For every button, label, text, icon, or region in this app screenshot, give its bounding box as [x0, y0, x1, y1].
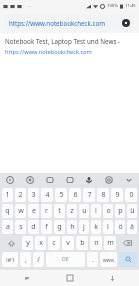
staticText: 7 [87, 190, 92, 200]
button[interactable]: a [2, 220, 13, 234]
staticText: 100% [107, 3, 118, 9]
staticText: 1 [5, 190, 10, 200]
staticText: s [19, 222, 23, 232]
button[interactable]: h [67, 220, 77, 234]
staticText: / [37, 255, 40, 265]
button[interactable]: g [54, 220, 65, 234]
button[interactable]: j [79, 220, 89, 234]
staticText: g [57, 222, 62, 232]
staticText: ä [130, 222, 134, 232]
button[interactable]: Backspace [118, 236, 137, 250]
staticText: 2 [18, 190, 23, 200]
staticText: https://www.notebookcheck.com [5, 48, 92, 56]
button[interactable]: ö [115, 220, 125, 234]
button[interactable]: Clear [122, 19, 130, 27]
button[interactable]: Space [46, 252, 85, 267]
staticText: z [70, 206, 74, 216]
button[interactable]: o [103, 204, 113, 218]
button[interactable]: i [91, 204, 101, 218]
button[interactable]: c [48, 236, 60, 250]
button[interactable]: 6 [69, 188, 81, 202]
staticText: r [45, 206, 48, 216]
staticText: !#1 [6, 256, 15, 264]
staticText: u [82, 206, 87, 216]
staticText: 8 [101, 190, 106, 200]
button[interactable]: 0 [125, 188, 137, 202]
button[interactable]: m [104, 236, 116, 250]
button[interactable]: 7 [83, 188, 95, 202]
button[interactable]: Home [55, 270, 85, 286]
button[interactable]: Voice input [83, 174, 95, 186]
button[interactable]: y [22, 236, 33, 250]
button[interactable]: Emoji [4, 174, 16, 186]
staticText: q [5, 206, 10, 216]
button[interactable]: 2 [15, 188, 26, 202]
button[interactable]: https://www.notebookcheck.com [4, 15, 135, 30]
button[interactable]: Notebook Test, Laptop Test und News - No… [0, 33, 139, 60]
staticText: Notebook Test, Laptop Test und News - No… [5, 37, 137, 46]
button[interactable]: / [33, 252, 44, 267]
staticText: 11:45 [125, 3, 136, 9]
button[interactable]: 5 [55, 188, 67, 202]
button[interactable]: b [76, 236, 88, 250]
button[interactable]: Settings [103, 174, 115, 186]
button[interactable]: . [87, 252, 98, 267]
staticText: w [18, 206, 24, 216]
staticText: 6 [73, 190, 78, 200]
button[interactable]: s [15, 220, 26, 234]
button[interactable]: 9 [111, 188, 123, 202]
button[interactable]: k [91, 220, 101, 234]
staticText: k [94, 222, 98, 232]
staticText: n [94, 238, 99, 248]
button[interactable]: ü [127, 204, 137, 218]
button[interactable]: 8 [97, 188, 109, 202]
button[interactable]: e [28, 204, 39, 218]
button[interactable]: u [79, 204, 89, 218]
staticText: e [32, 206, 36, 216]
button[interactable]: Recents [12, 270, 42, 286]
staticText: d [31, 222, 36, 232]
staticText: i [95, 206, 97, 216]
button[interactable]: GIF [44, 174, 56, 186]
staticText: ö [118, 222, 123, 232]
staticText: 9 [115, 190, 120, 200]
button[interactable]: !#1 [2, 252, 18, 267]
staticText: , [25, 255, 27, 265]
staticText: t [58, 206, 61, 216]
button[interactable]: Shift [2, 236, 20, 250]
staticText: 3 [31, 190, 36, 200]
button[interactable]: l [103, 220, 113, 234]
button[interactable]: 4 [41, 188, 53, 202]
button[interactable]: Translate [64, 174, 76, 186]
staticText: www. [103, 257, 115, 263]
button[interactable]: z [67, 204, 77, 218]
staticText: https://www.notebookcheck.com [9, 19, 122, 27]
staticText: v [66, 238, 70, 248]
button[interactable]: 1 [2, 188, 13, 202]
staticText: p [118, 206, 123, 216]
button[interactable]: Go [119, 252, 137, 267]
button[interactable]: r [41, 204, 52, 218]
button[interactable]: , [20, 252, 31, 267]
button[interactable]: f [41, 220, 52, 234]
button[interactable]: Hide keyboard [123, 174, 135, 186]
button[interactable]: Sticker [24, 174, 36, 186]
staticText: 4 [45, 190, 50, 200]
button[interactable]: www. [100, 252, 117, 267]
button[interactable]: Back [97, 270, 127, 286]
staticText: o [106, 206, 111, 216]
button[interactable]: x [35, 236, 46, 250]
button[interactable]: v [62, 236, 74, 250]
button[interactable]: q [2, 204, 13, 218]
staticText: . [92, 255, 94, 265]
button[interactable]: n [90, 236, 102, 250]
button[interactable]: d [28, 220, 39, 234]
button[interactable]: w [15, 204, 26, 218]
staticText: a [6, 222, 10, 232]
staticText: y [26, 238, 30, 248]
button[interactable]: 3 [28, 188, 39, 202]
button[interactable]: p [115, 204, 125, 218]
button[interactable]: t [54, 204, 65, 218]
staticText: x [39, 238, 43, 248]
button[interactable]: ä [127, 220, 137, 234]
